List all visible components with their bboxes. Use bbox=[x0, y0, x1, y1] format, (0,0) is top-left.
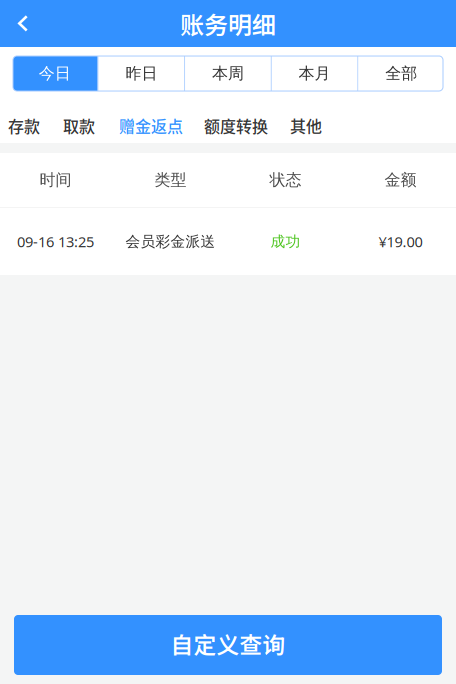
staticText: 状态 bbox=[269, 170, 301, 190]
staticText: 额度转换 bbox=[204, 114, 268, 137]
button[interactable]: 额度转换 bbox=[204, 117, 268, 134]
staticText: 本周 bbox=[212, 64, 244, 83]
button[interactable]: 存款 bbox=[8, 117, 40, 134]
button[interactable]: 本月 bbox=[272, 56, 357, 91]
button[interactable]: 自定义查询 bbox=[14, 615, 442, 675]
staticText: 自定义查询 bbox=[170, 627, 285, 660]
staticText: 09-16 13:25 bbox=[17, 232, 94, 251]
button[interactable]: 取款 bbox=[63, 117, 95, 134]
staticText: 存款 bbox=[8, 114, 40, 137]
staticText: 会员彩金派送 bbox=[125, 232, 215, 250]
staticText: 昨日 bbox=[125, 64, 157, 83]
staticText: 金额 bbox=[384, 170, 416, 190]
staticText: 赠金返点 bbox=[119, 114, 183, 137]
staticText: 类型 bbox=[154, 170, 186, 190]
button[interactable]: 今日 bbox=[12, 56, 98, 91]
button[interactable]: 本周 bbox=[185, 56, 271, 91]
staticText: 取款 bbox=[63, 114, 95, 137]
button[interactable]: 赠金返点 bbox=[119, 117, 183, 134]
button[interactable]: Back bbox=[0, 0, 46, 47]
staticText: 本月 bbox=[299, 64, 331, 83]
button[interactable]: 其他 bbox=[290, 117, 322, 134]
staticText: 其他 bbox=[290, 114, 322, 137]
button[interactable]: 昨日 bbox=[99, 56, 184, 91]
staticText: 全部 bbox=[385, 64, 417, 83]
staticText: 账务明细 bbox=[180, 6, 276, 41]
staticText: 时间 bbox=[39, 170, 71, 190]
staticText: ¥19.00 bbox=[378, 232, 422, 251]
staticText: 成功 bbox=[270, 232, 300, 250]
button[interactable]: 全部 bbox=[358, 56, 444, 91]
staticText: 今日 bbox=[39, 64, 71, 83]
